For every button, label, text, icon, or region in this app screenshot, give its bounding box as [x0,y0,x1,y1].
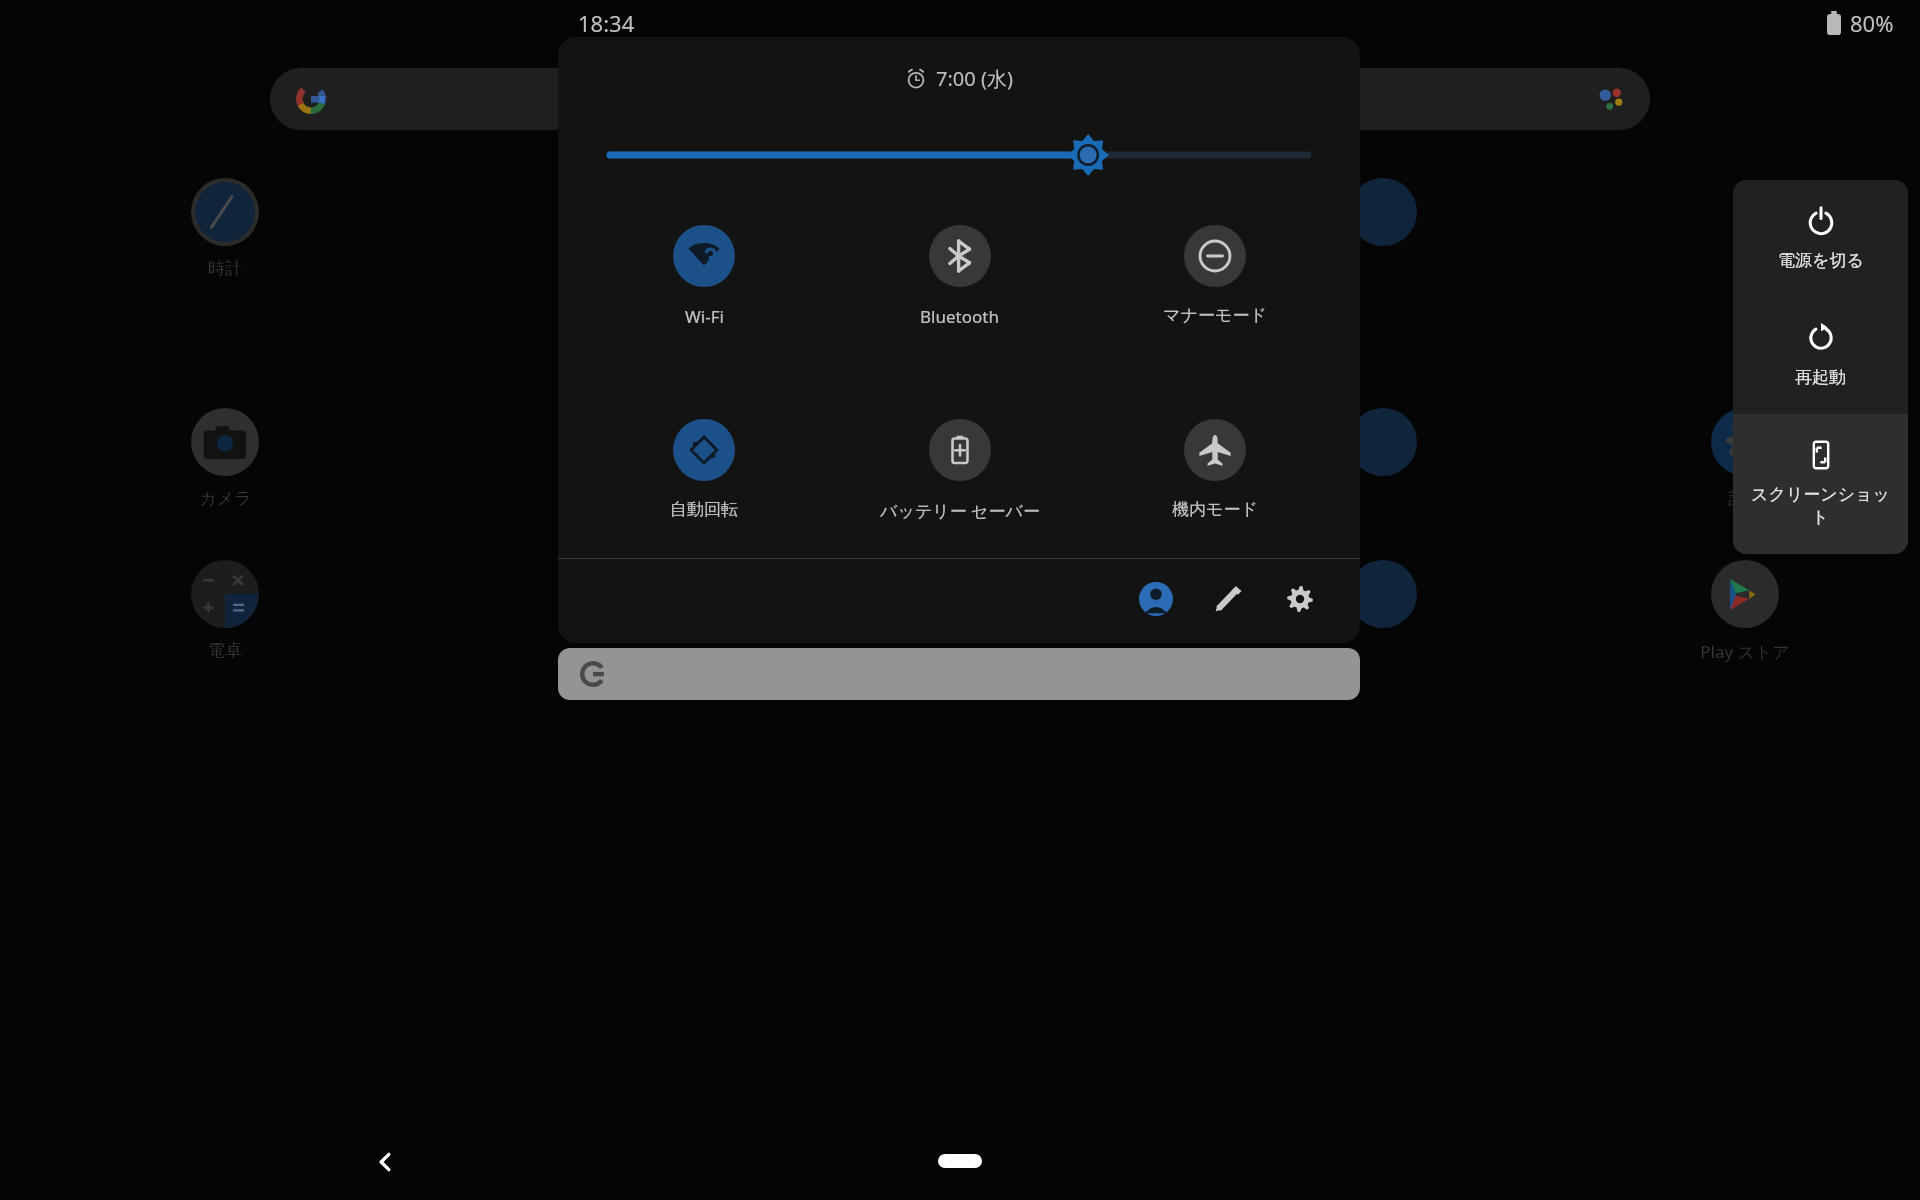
button[interactable]: 設定 [1680,408,1810,509]
button[interactable] [1318,560,1448,628]
staticText: 再起動 [1795,367,1846,388]
button[interactable]: 再起動 [1733,297,1908,414]
button[interactable]: 電卓 [160,560,290,661]
staticText: マナーモード [1163,305,1267,326]
button[interactable]: Play ストア [1680,560,1810,663]
button[interactable]: Home [938,1154,982,1168]
staticText: 18:34 [578,8,635,38]
staticText: 電源を切る [1778,250,1864,271]
staticText: 電卓 [208,640,242,661]
button[interactable] [538,178,668,246]
button[interactable]: 電源を切る [1733,180,1908,297]
button[interactable] [538,560,668,628]
button[interactable]: バッテリー セーバー [832,419,1087,522]
button[interactable]: カメラ [160,408,290,509]
staticText: 80% [1850,8,1894,38]
button[interactable]: User [1134,577,1178,621]
button[interactable] [1318,408,1448,476]
staticText: スクリーンショット [1743,484,1898,528]
button[interactable] [558,648,1360,700]
staticText: 設定 [1728,488,1762,509]
button[interactable] [538,408,668,476]
button[interactable]: 時計 [160,178,290,279]
staticText: 時計 [208,258,242,279]
button[interactable]: 自動回転 [576,419,832,520]
button[interactable]: Edit [1206,577,1250,621]
button[interactable]: 機内モード [1087,419,1342,520]
staticText: Play ストア [1700,640,1790,663]
staticText: 7:00 (水) [936,65,1013,92]
staticText: バッテリー セーバー [880,499,1040,522]
button[interactable]: スクリーンショット [1733,414,1908,554]
staticText: カメラ [199,488,252,509]
button[interactable] [1318,178,1448,246]
button[interactable]: Back [362,1138,410,1186]
button[interactable]: Assistant [270,68,1650,130]
staticText: 自動回転 [670,499,738,520]
other: Assistant [1598,86,1624,112]
staticText: Bluetooth [920,305,999,328]
button[interactable]: Brightness [610,133,1308,177]
button[interactable]: Bluetooth [832,225,1087,328]
staticText: 機内モード [1172,499,1258,520]
button[interactable]: Wi-Fi [576,225,832,328]
button[interactable]: Settings [1278,577,1322,621]
button[interactable]: マナーモード [1087,225,1342,326]
staticText: Wi-Fi [685,305,724,328]
